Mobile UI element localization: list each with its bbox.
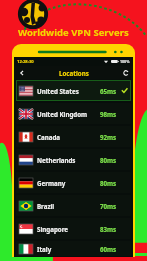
button[interactable]: Germany <box>16 172 131 193</box>
staticText: 98ms <box>100 110 117 118</box>
staticText: 60ms <box>100 245 117 253</box>
button[interactable]: Singapore <box>16 218 131 239</box>
button[interactable]: Italy <box>16 241 131 256</box>
staticText: Netherlands <box>37 156 100 164</box>
staticText: Germany <box>37 179 100 187</box>
staticText: Worldwide VPN Servers <box>18 26 129 39</box>
button[interactable]: Canada <box>16 126 131 147</box>
staticText: Brazil <box>37 202 100 210</box>
staticText: Canada <box>37 133 100 141</box>
button[interactable]: United Kingdom <box>16 103 131 124</box>
button[interactable]: Netherlands <box>16 149 131 170</box>
staticText: 100% <box>120 59 130 64</box>
staticText: Singapore <box>37 225 100 233</box>
staticText: 80ms <box>100 179 117 187</box>
staticText: 12:28:30 <box>17 59 34 65</box>
staticText: 83ms <box>100 225 117 233</box>
button[interactable]: United States <box>16 80 131 101</box>
staticText: 65ms <box>100 87 117 95</box>
staticText: 80ms <box>100 156 117 164</box>
staticText: United States <box>37 87 100 95</box>
staticText: Locations <box>59 69 89 77</box>
staticText: 92ms <box>100 133 117 141</box>
staticText: Italy <box>37 245 100 253</box>
button[interactable]: Brazil <box>16 195 131 216</box>
button[interactable]: Back <box>16 67 27 78</box>
button[interactable]: Refresh <box>120 67 131 78</box>
staticText: 70ms <box>100 202 117 210</box>
staticText: United Kingdom <box>37 110 100 118</box>
